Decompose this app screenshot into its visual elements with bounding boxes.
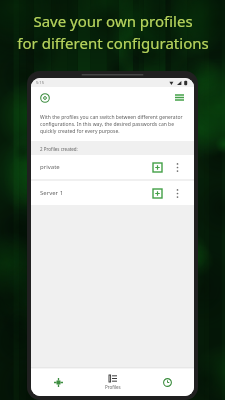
staticText: 2 Profiles created: <box>40 146 78 152</box>
button[interactable]: Server 1 <box>31 181 194 205</box>
staticText: Server 1 <box>40 189 64 197</box>
staticText: for different configurations <box>17 33 209 53</box>
button[interactable]: private <box>31 155 194 179</box>
button[interactable]: Profiles <box>86 369 140 396</box>
staticText: private <box>40 163 60 171</box>
staticText: With the profiles you can switch between… <box>40 114 185 135</box>
staticText: 5:15 <box>36 80 44 85</box>
staticText: Save your own profiles <box>33 11 193 31</box>
button[interactable]: More options for Server 1 <box>170 186 185 201</box>
button[interactable]: Generator <box>31 369 86 396</box>
button[interactable]: Activate profile Server 1 <box>150 186 165 201</box>
staticText: Profiles <box>105 384 121 390</box>
button[interactable]: History <box>140 369 194 396</box>
button[interactable]: Menu <box>172 90 187 105</box>
button[interactable]: Activate profile private <box>150 160 165 175</box>
button[interactable]: Help <box>38 91 52 105</box>
button[interactable]: More options for private <box>170 160 185 175</box>
